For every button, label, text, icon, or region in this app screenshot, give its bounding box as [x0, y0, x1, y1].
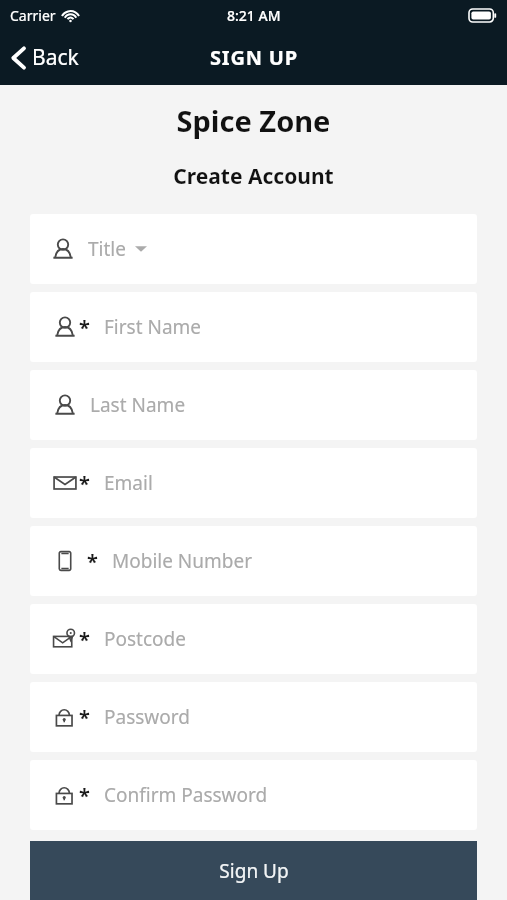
staticText: First Name: [104, 314, 202, 340]
staticText: Title: [88, 236, 126, 262]
button[interactable]: *: [30, 760, 477, 830]
button[interactable]: *: [30, 448, 477, 518]
staticText: Last Name: [90, 392, 186, 418]
button[interactable]: *: [30, 292, 477, 362]
staticText: *: [79, 626, 90, 652]
staticText: *: [79, 704, 90, 730]
staticText: Sign Up: [219, 858, 289, 884]
staticText: SIGN UP: [210, 44, 298, 71]
staticText: Confirm Password: [104, 782, 268, 808]
staticText: Create Account: [0, 162, 507, 191]
button[interactable]: Title: [30, 214, 477, 284]
staticText: Postcode: [104, 626, 186, 652]
staticText: Email: [104, 470, 153, 496]
staticText: Mobile Number: [112, 548, 253, 574]
staticText: Password: [104, 704, 190, 730]
button[interactable]: Sign Up: [30, 841, 477, 900]
button[interactable]: Last Name: [30, 370, 477, 440]
staticText: *: [79, 470, 90, 496]
staticText: *: [79, 782, 90, 808]
staticText: *: [87, 548, 98, 574]
staticText: Carrier: [10, 6, 56, 25]
button[interactable]: *: [30, 526, 477, 596]
staticText: *: [79, 314, 90, 340]
staticText: Spice Zone: [0, 101, 507, 140]
button[interactable]: *: [30, 604, 477, 674]
button[interactable]: *: [30, 682, 477, 752]
button[interactable]: Back: [0, 30, 93, 85]
staticText: Back: [32, 43, 79, 72]
staticText: 8:21 AM: [227, 6, 281, 25]
